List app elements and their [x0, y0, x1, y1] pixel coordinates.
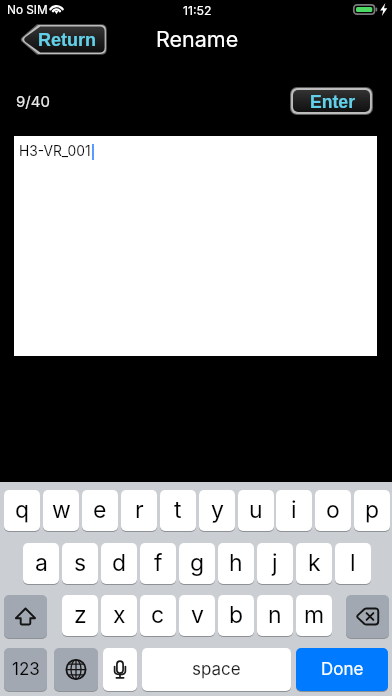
button[interactable]: Enter: [290, 87, 373, 115]
staticText: r: [135, 496, 144, 524]
staticText: space: [192, 659, 241, 680]
staticText: w: [52, 496, 71, 524]
button[interactable]: Shift: [4, 595, 47, 638]
staticText: s: [74, 549, 87, 577]
staticText: q: [15, 496, 30, 524]
button[interactable]: r: [121, 490, 157, 531]
button[interactable]: s: [62, 543, 98, 584]
button[interactable]: l: [335, 543, 371, 584]
button[interactable]: y: [199, 490, 235, 531]
button[interactable]: z: [62, 595, 98, 636]
staticText: Enter: [310, 92, 355, 112]
button[interactable]: n: [257, 595, 293, 636]
button[interactable]: m: [296, 595, 332, 636]
staticText: j: [272, 549, 278, 577]
button[interactable]: i: [276, 490, 312, 531]
staticText: No SIM: [7, 3, 48, 17]
staticText: f: [154, 549, 163, 577]
button[interactable]: v: [179, 595, 215, 636]
staticText: Return: [38, 30, 96, 50]
button[interactable]: Done: [296, 648, 388, 691]
button[interactable]: c: [140, 595, 176, 636]
staticText: Rename: [156, 26, 239, 52]
button[interactable]: g: [179, 543, 215, 584]
button[interactable]: p: [354, 490, 390, 531]
button[interactable]: a: [23, 543, 59, 584]
button[interactable]: space: [142, 648, 291, 691]
button[interactable]: q: [4, 490, 40, 531]
staticText: v: [191, 601, 204, 629]
staticText: z: [74, 601, 87, 629]
button[interactable]: Return: [19, 24, 107, 55]
button[interactable]: t: [160, 490, 196, 531]
staticText: p: [365, 496, 380, 524]
staticText: k: [308, 549, 321, 577]
button[interactable]: w: [43, 490, 79, 531]
button[interactable]: e: [82, 490, 118, 531]
button[interactable]: H3-VR_001: [14, 136, 377, 356]
staticText: e: [93, 496, 107, 524]
button[interactable]: 123: [4, 648, 47, 691]
staticText: 11:52: [183, 3, 212, 18]
staticText: 123: [12, 659, 40, 680]
staticText: i: [291, 496, 297, 524]
staticText: h: [229, 549, 243, 577]
button[interactable]: h: [218, 543, 254, 584]
staticText: a: [35, 549, 48, 577]
staticText: m: [304, 601, 325, 629]
staticText: t: [174, 496, 182, 524]
button[interactable]: Dictation: [103, 648, 137, 691]
button[interactable]: d: [101, 543, 137, 584]
button[interactable]: b: [218, 595, 254, 636]
button[interactable]: k: [296, 543, 332, 584]
staticText: c: [151, 601, 165, 629]
staticText: u: [249, 496, 263, 524]
staticText: g: [190, 549, 205, 577]
staticText: l: [350, 549, 356, 577]
staticText: o: [326, 496, 340, 524]
button[interactable]: Next keyboard: [54, 648, 98, 691]
staticText: y: [211, 496, 224, 524]
button[interactable]: o: [315, 490, 351, 531]
staticText: 9/40: [16, 92, 50, 110]
staticText: b: [229, 601, 244, 629]
button[interactable]: Backspace: [346, 595, 389, 638]
button[interactable]: j: [257, 543, 293, 584]
button[interactable]: u: [238, 490, 274, 531]
staticText: n: [268, 601, 282, 629]
staticText: x: [113, 601, 126, 629]
staticText: d: [112, 549, 127, 577]
staticText: H3-VR_001: [19, 143, 91, 160]
staticText: Done: [321, 659, 364, 680]
button[interactable]: f: [140, 543, 176, 584]
button[interactable]: x: [101, 595, 137, 636]
